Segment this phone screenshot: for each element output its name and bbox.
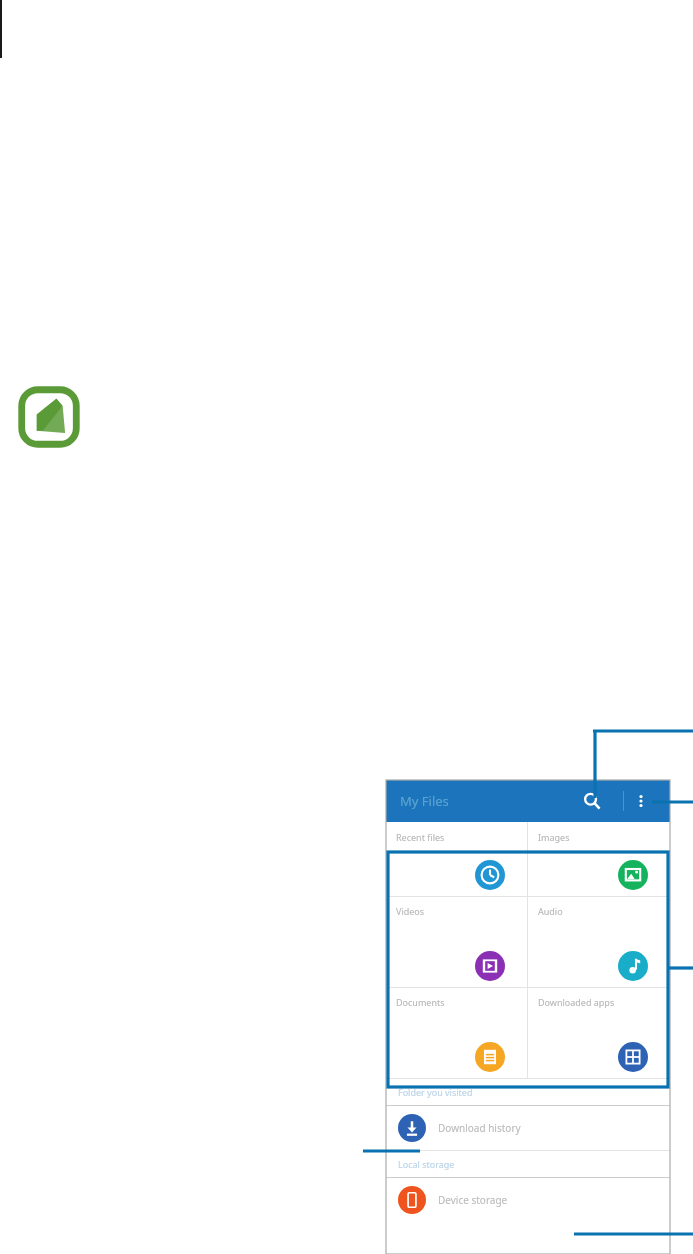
button[interactable]: Device storage (386, 1178, 670, 1222)
staticText: Device storage (438, 1193, 508, 1207)
button[interactable] (386, 852, 527, 896)
staticText: Downloaded apps (538, 996, 615, 1008)
button[interactable]: Audio (528, 897, 670, 987)
staticText: Local storage (398, 1158, 455, 1170)
staticText: Videos (396, 905, 425, 917)
button[interactable]: More options (624, 784, 658, 818)
button[interactable]: Videos (386, 897, 527, 987)
staticText: Recent files (396, 831, 445, 843)
staticText: Documents (396, 996, 445, 1008)
staticText: Folder you visited (398, 1086, 473, 1098)
staticText: Audio (538, 905, 563, 917)
staticText: Images (538, 831, 570, 843)
button[interactable] (528, 852, 670, 896)
button[interactable]: Download history (386, 1106, 670, 1150)
button[interactable]: Documents (386, 988, 527, 1078)
button[interactable]: Downloaded apps (528, 988, 670, 1078)
staticText: My Files (400, 792, 449, 810)
button[interactable]: Search (574, 783, 610, 819)
staticText: Download history (438, 1121, 521, 1135)
